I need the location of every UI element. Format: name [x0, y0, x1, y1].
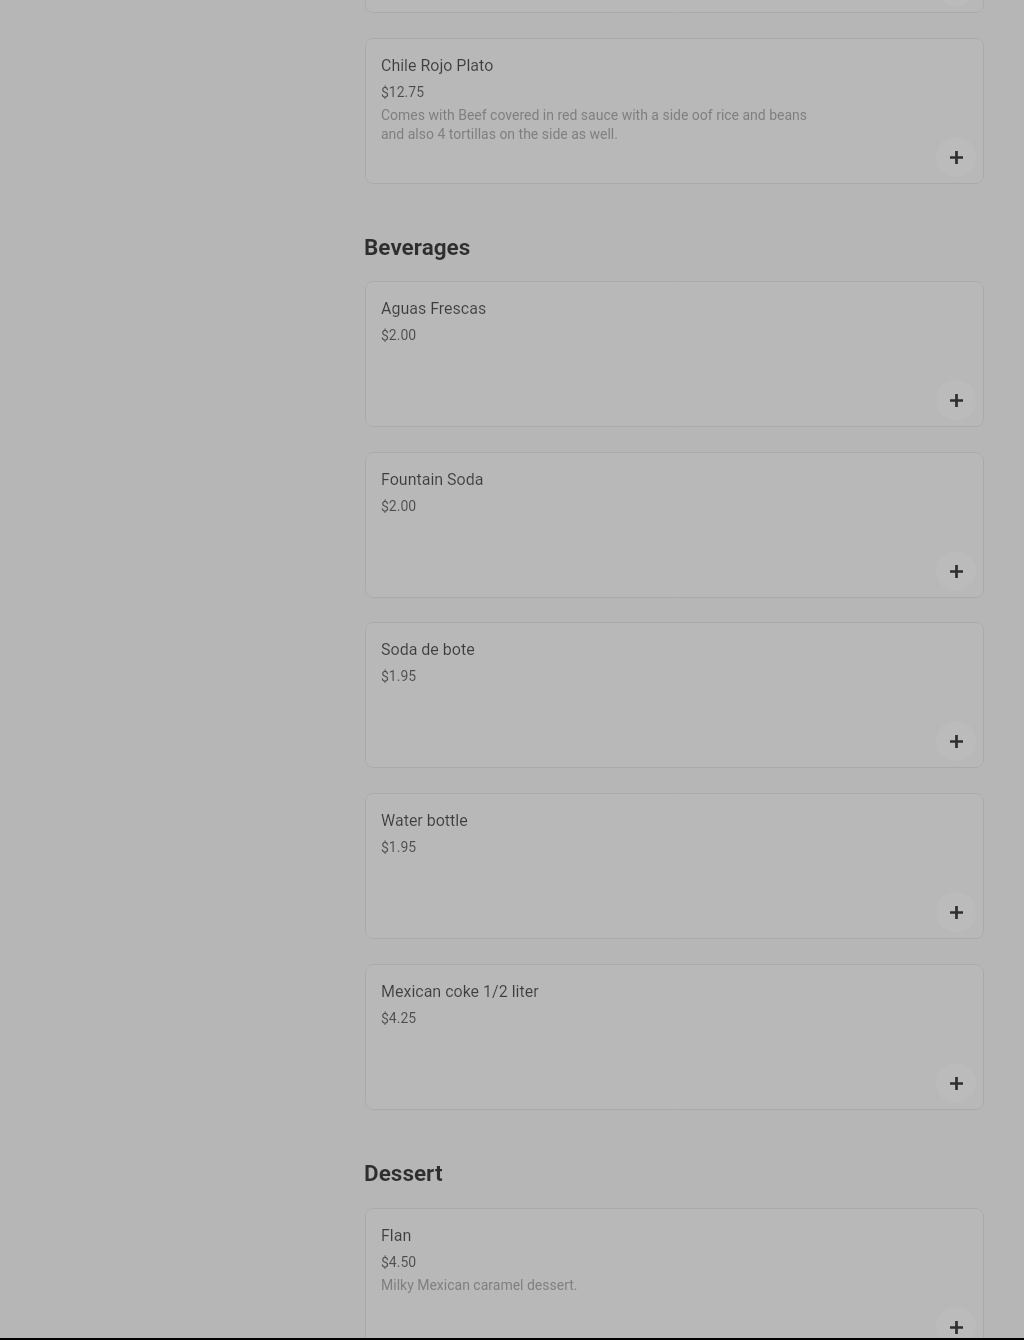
- button[interactable]: Add Fountain Soda: [936, 551, 976, 591]
- button[interactable]: Add Aguas Frescas: [936, 380, 976, 420]
- staticText: $1.95: [381, 668, 417, 684]
- button[interactable]: Add Chile Rojo Plato: [936, 137, 976, 177]
- button[interactable]: Soda de bote: [365, 622, 984, 768]
- button[interactable]: Add Water bottle: [936, 892, 976, 932]
- button[interactable]: Add Flan: [936, 1307, 976, 1340]
- button[interactable]: Mexican coke 1/2 liter: [365, 964, 984, 1110]
- button[interactable]: Water bottle: [365, 793, 984, 939]
- button[interactable]: Add Mexican coke 1/2 liter: [936, 1063, 976, 1103]
- staticText: Milky Mexican caramel dessert.: [381, 1277, 578, 1293]
- staticText: $4.25: [381, 1010, 417, 1026]
- staticText: $2.00: [381, 498, 417, 514]
- button[interactable]: Aguas Frescas: [365, 281, 984, 427]
- button[interactable]: Add previous item: [365, 0, 984, 13]
- staticText: Aguas Frescas: [381, 299, 487, 318]
- button[interactable]: Flan: [365, 1208, 984, 1340]
- staticText: Chile Rojo Plato: [381, 56, 494, 75]
- staticText: $12.75: [381, 84, 425, 100]
- staticText: Water bottle: [381, 811, 468, 830]
- staticText: Flan: [381, 1226, 412, 1245]
- staticText: $2.00: [381, 327, 417, 343]
- staticText: Beverages: [364, 234, 471, 260]
- staticText: Soda de bote: [381, 640, 475, 659]
- staticText: Dessert: [364, 1160, 443, 1186]
- staticText: Comes with Beef covered in red sauce wit…: [381, 107, 808, 142]
- staticText: Mexican coke 1/2 liter: [381, 982, 539, 1001]
- staticText: $1.95: [381, 839, 417, 855]
- staticText: Fountain Soda: [381, 470, 484, 489]
- button[interactable]: Chile Rojo Plato: [365, 38, 984, 184]
- staticText: $4.50: [381, 1254, 417, 1270]
- button[interactable]: Fountain Soda: [365, 452, 984, 598]
- button[interactable]: Add Soda de bote: [936, 721, 976, 761]
